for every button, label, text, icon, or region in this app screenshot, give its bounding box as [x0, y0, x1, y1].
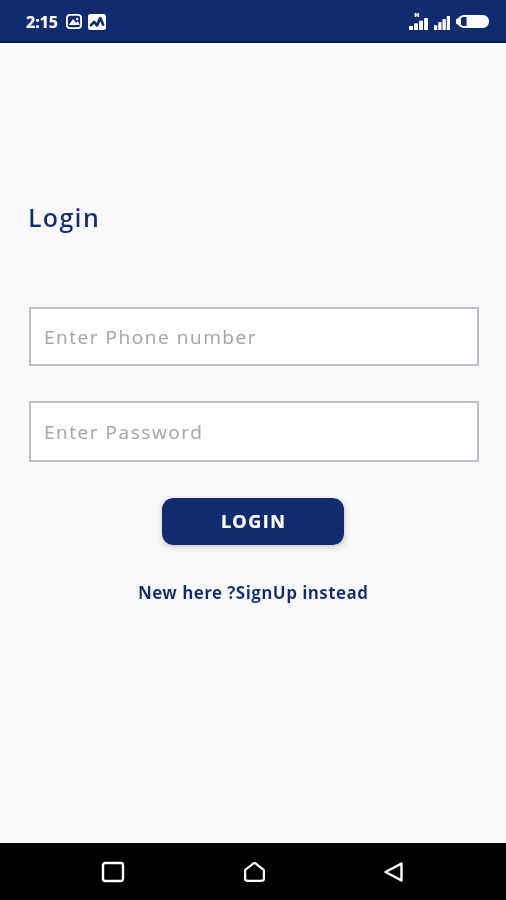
- staticText: Enter Phone number: [44, 324, 258, 350]
- button[interactable]: Recents: [91, 850, 135, 894]
- staticText: LOGIN: [221, 509, 287, 534]
- staticText: Login: [28, 200, 101, 234]
- button[interactable]: New here ?SignUp instead: [138, 581, 369, 604]
- staticText: Enter Password: [44, 419, 204, 445]
- staticText: 2:15: [26, 11, 58, 33]
- button[interactable]: Enter Phone number: [29, 307, 479, 366]
- button[interactable]: Home: [232, 850, 276, 894]
- button[interactable]: LOGIN: [162, 498, 344, 545]
- button[interactable]: Enter Password: [29, 401, 479, 462]
- button[interactable]: Back: [371, 850, 415, 894]
